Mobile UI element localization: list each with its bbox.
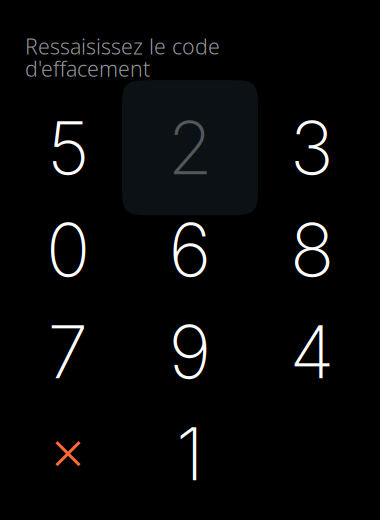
button[interactable]: Delete <box>7 403 129 505</box>
button[interactable]: 5 <box>7 97 129 199</box>
button[interactable]: 7 <box>7 301 129 403</box>
staticText: Ressaisissez le code <box>25 32 220 60</box>
staticText: 9 <box>168 307 211 396</box>
button[interactable]: 2 <box>129 97 251 199</box>
button[interactable]: 0 <box>7 199 129 301</box>
staticText: 7 <box>47 307 88 396</box>
button[interactable]: 8 <box>251 199 373 301</box>
staticText: 6 <box>168 205 211 294</box>
button[interactable]: 3 <box>251 97 373 199</box>
staticText: 0 <box>46 205 90 294</box>
staticText: 3 <box>290 103 334 192</box>
staticText: 4 <box>289 307 334 396</box>
button[interactable]: 9 <box>129 301 251 403</box>
staticText: 5 <box>47 103 89 192</box>
staticText: 8 <box>290 205 334 294</box>
staticText: 2 <box>167 103 212 192</box>
button[interactable]: 1 <box>129 403 251 505</box>
staticText: 1 <box>176 409 204 498</box>
button[interactable]: 6 <box>129 199 251 301</box>
staticText: d'effacement <box>25 54 150 83</box>
button[interactable]: 4 <box>251 301 373 403</box>
